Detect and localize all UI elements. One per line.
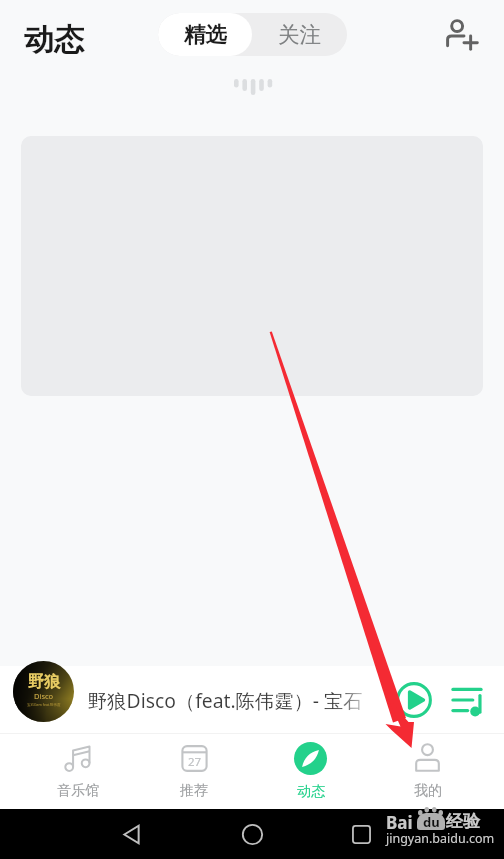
staticText: 音乐馆 (57, 782, 99, 800)
staticText: 我的 (414, 782, 442, 800)
staticText: 动态 (24, 21, 84, 59)
staticText: 关注 (278, 21, 321, 48)
button[interactable]: Add friend (438, 12, 486, 60)
staticText: jingyan.baidu.com (386, 830, 495, 847)
staticText: Disco (34, 691, 54, 701)
staticText: du (423, 813, 440, 830)
button[interactable]: 关注 (252, 13, 347, 56)
button[interactable]: Back (111, 814, 151, 854)
button[interactable]: 音乐馆 (20, 734, 136, 809)
button[interactable]: Album art (13, 661, 74, 722)
button[interactable] (21, 136, 483, 396)
staticText: 动态 (297, 783, 325, 801)
staticText: 野狼Disco（feat.陈伟霆）- 宝石Gem (88, 687, 376, 713)
button[interactable]: 精选 (158, 13, 252, 56)
staticText: 精选 (184, 21, 227, 48)
button[interactable]: Play (390, 676, 438, 724)
staticText: Bai (386, 811, 413, 834)
button[interactable]: Home (232, 814, 272, 854)
staticText: 经验 (446, 811, 480, 832)
button[interactable]: 27 (136, 734, 252, 809)
staticText: 野狼 (28, 672, 60, 692)
button[interactable]: 动态 (252, 734, 369, 809)
staticText: 宝石Gem feat.陈伟霆 (27, 702, 61, 707)
staticText: 推荐 (180, 782, 208, 800)
button[interactable]: Recents (341, 814, 381, 854)
button[interactable]: 我的 (369, 734, 486, 809)
staticText: 27 (188, 754, 202, 770)
button[interactable]: Playlist (443, 676, 491, 724)
